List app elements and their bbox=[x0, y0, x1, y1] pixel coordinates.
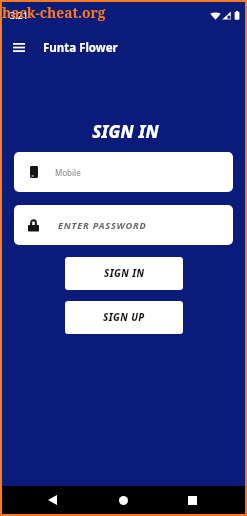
button[interactable]: Recent apps bbox=[178, 486, 207, 514]
button[interactable]: SIGN IN bbox=[65, 257, 183, 290]
button[interactable]: Back bbox=[38, 486, 67, 514]
staticText: hack-cheat.org bbox=[2, 3, 106, 22]
button[interactable]: SIGN UP bbox=[65, 301, 183, 334]
button[interactable]: Open navigation menu bbox=[2, 28, 40, 68]
staticText: SIGN UP bbox=[103, 311, 145, 324]
staticText: 3:21 bbox=[10, 9, 28, 21]
staticText: Funta Flower bbox=[43, 40, 118, 56]
button[interactable]: Mobile bbox=[14, 152, 233, 192]
button[interactable]: ENTER PASSWORD bbox=[14, 205, 233, 245]
staticText: SIGN IN bbox=[4, 120, 247, 143]
staticText: SIGN IN bbox=[104, 267, 145, 280]
staticText: Mobile bbox=[55, 167, 81, 178]
button[interactable]: Home bbox=[109, 486, 138, 514]
staticText: ENTER PASSWORD bbox=[58, 219, 147, 232]
